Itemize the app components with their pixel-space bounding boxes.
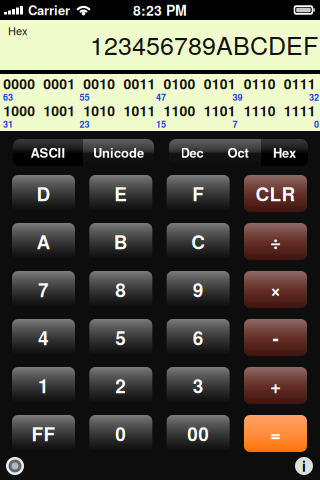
button[interactable]: ÷ [244,223,307,260]
button[interactable]: D [12,175,75,212]
staticText: ASCII [30,143,65,162]
button[interactable]: × [244,271,307,308]
staticText: 63 [3,91,13,103]
staticText: 1 [38,372,49,399]
staticText: Unicode [93,143,144,162]
staticText: 0 [314,118,319,130]
button[interactable]: Dec [169,139,215,166]
staticText: Hex [273,143,296,162]
button[interactable]: A [12,223,75,260]
staticText: 1100 [164,100,196,120]
button[interactable]: 4 [12,319,75,356]
staticText: 7 [38,276,49,303]
staticText: 8:23 PM [133,0,187,20]
button[interactable]: 0 [89,415,152,452]
staticText: D [36,180,50,207]
staticText: 1001 [43,100,75,120]
button[interactable]: F [167,175,230,212]
button[interactable]: 5 [89,319,152,356]
button[interactable]: 00 [167,415,230,452]
staticText: 1010 [83,100,115,120]
staticText: 0011 [123,73,155,93]
staticText: 0100 [164,73,196,93]
staticText: 1011 [123,100,155,120]
button[interactable]: B [89,223,152,260]
staticText: 00 [187,420,209,447]
staticText: - [272,324,278,351]
staticText: Carrier [28,1,70,19]
staticText: Hex [8,23,28,38]
button[interactable]: Info [294,456,314,476]
button[interactable]: 1 [12,367,75,404]
staticText: 9 [193,276,204,303]
staticText: 39 [232,91,242,103]
button[interactable]: ASCII [13,139,83,166]
button[interactable]: CLR [244,175,307,212]
button[interactable]: C [167,223,230,260]
staticText: i [302,456,306,476]
staticText: 3 [193,372,204,399]
staticText: + [270,372,281,399]
staticText: 55 [79,91,89,103]
button[interactable]: Unicode [83,139,154,166]
staticText: 23 [79,118,89,130]
staticText: 0111 [284,73,316,93]
button[interactable]: + [244,367,307,404]
button[interactable]: E [89,175,152,212]
button[interactable]: Settings [5,456,25,476]
button[interactable]: - [244,319,307,356]
staticText: 1110 [244,100,276,120]
staticText: 2 [115,372,126,399]
staticText: E [114,180,127,207]
staticText: 4 [38,324,49,351]
button[interactable]: 8 [89,271,152,308]
staticText: 47 [156,91,166,103]
staticText: 15 [156,118,166,130]
staticText: 32 [309,91,319,103]
staticText: 8 [115,276,126,303]
staticText: Oct [227,143,248,162]
button[interactable]: 7 [12,271,75,308]
staticText: ÷ [270,228,281,255]
button[interactable]: 6 [167,319,230,356]
staticText: 0 [115,420,126,447]
staticText: 0001 [43,73,75,93]
staticText: F [192,180,204,207]
staticText: CLR [255,180,295,207]
button[interactable]: 2 [89,367,152,404]
staticText: = [270,420,281,447]
button[interactable]: FF [12,415,75,452]
button[interactable]: 3 [167,367,230,404]
button[interactable]: Oct [215,139,261,166]
staticText: 0000 [3,73,35,93]
staticText: FF [31,420,55,447]
staticText: C [191,228,205,255]
staticText: 123456789ABCDEF [90,26,318,62]
staticText: 0101 [204,73,236,93]
staticText: Dec [180,143,203,162]
button[interactable]: Hex [261,139,308,166]
staticText: × [270,276,281,303]
button[interactable]: 9 [167,271,230,308]
staticText: 1111 [284,100,316,120]
staticText: 0110 [244,73,276,93]
staticText: 1101 [204,100,236,120]
staticText: 0010 [83,73,115,93]
staticText: 7 [232,118,237,130]
staticText: 31 [3,118,13,130]
staticText: 6 [193,324,204,351]
staticText: 5 [115,324,126,351]
staticText: B [114,228,128,255]
staticText: 1000 [3,100,35,120]
button[interactable]: = [244,415,307,452]
staticText: A [36,228,50,255]
